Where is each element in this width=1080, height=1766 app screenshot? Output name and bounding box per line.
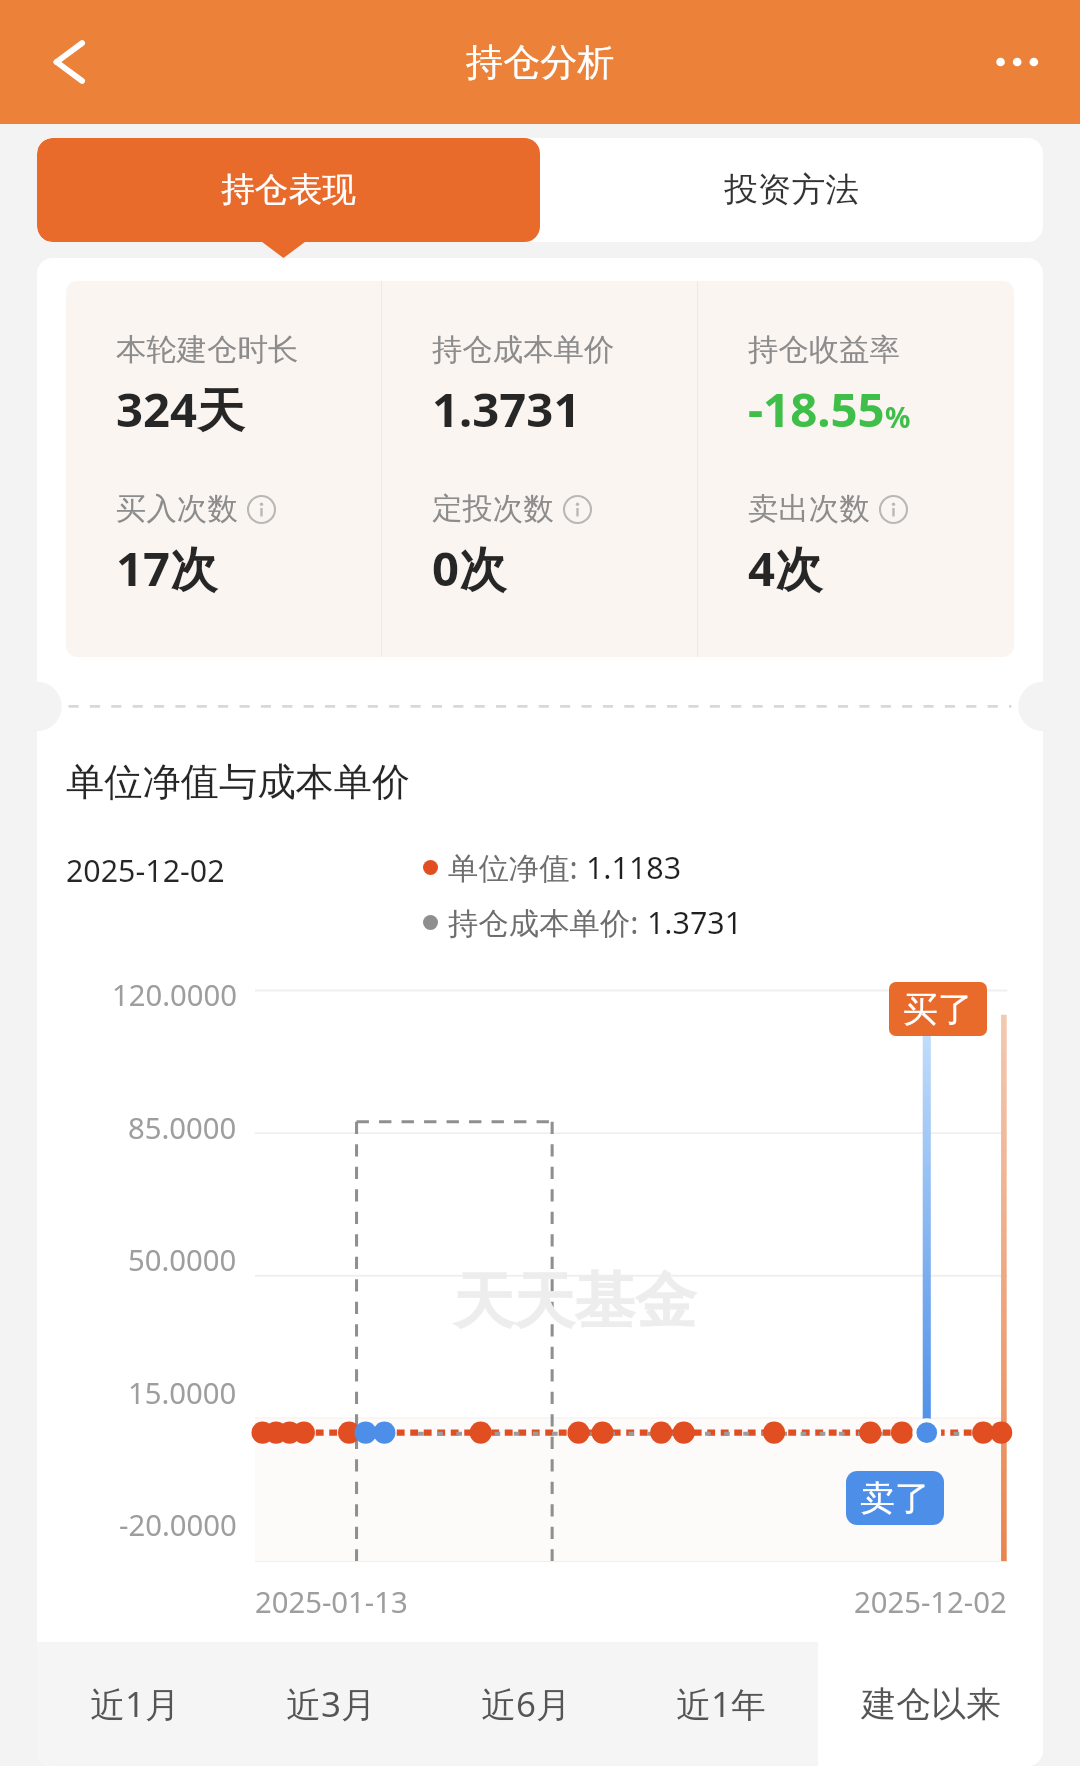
staticText: 持仓成本单价: — [448, 902, 647, 943]
staticText: 单位净值: — [448, 847, 586, 888]
staticText: 2025-12-02 — [854, 1582, 1007, 1622]
staticText: 近6月 — [481, 1680, 571, 1728]
staticText: 2025-01-13 — [255, 1582, 408, 1622]
staticText: 持仓表现 — [221, 169, 356, 212]
staticText: -20.0000 — [119, 1505, 237, 1545]
staticText: 近1年 — [676, 1680, 766, 1728]
staticText: 0次 — [432, 535, 507, 600]
staticText: 建仓以来 — [861, 1682, 1001, 1726]
staticText: % — [885, 398, 911, 436]
button[interactable]: 近3月 — [233, 1642, 428, 1766]
staticText: 投资方法 — [724, 169, 859, 212]
staticText: 近1月 — [90, 1680, 180, 1728]
button[interactable]: 近1月 — [37, 1642, 233, 1766]
staticText: 持仓分析 — [466, 39, 615, 86]
staticText: 17次 — [116, 535, 218, 600]
button[interactable]: 建仓以来 — [818, 1642, 1043, 1766]
staticText: -18.55 — [748, 376, 885, 440]
staticText: 买了 — [903, 987, 973, 1031]
staticText: 近3月 — [286, 1680, 376, 1728]
staticText: 4次 — [748, 535, 823, 600]
staticText: 1.3731 — [647, 902, 743, 943]
button[interactable]: Back — [18, 19, 104, 105]
staticText: 定投次数 — [432, 490, 554, 528]
staticText: 1.3731 — [432, 376, 581, 440]
staticText: 120.0000 — [112, 975, 237, 1015]
staticText: 持仓收益率 — [748, 331, 900, 369]
staticText: 本轮建仓时长 — [116, 331, 299, 369]
staticText: 卖出次数 — [748, 490, 870, 528]
button[interactable]: 投资方法 — [540, 138, 1043, 242]
button[interactable]: More options — [974, 17, 1064, 107]
staticText: 50.0000 — [128, 1240, 237, 1280]
staticText: 单位净值与成本单价 — [66, 758, 411, 806]
button[interactable]: 持仓表现 — [37, 138, 540, 242]
button[interactable]: 近6月 — [428, 1642, 623, 1766]
staticText: 85.0000 — [128, 1108, 237, 1148]
button[interactable]: 买了 — [889, 982, 987, 1036]
button[interactable]: 卖了 — [846, 1471, 944, 1525]
staticText: 持仓成本单价 — [432, 331, 615, 369]
staticText: 15.0000 — [128, 1373, 237, 1413]
staticText: 1.1183 — [586, 847, 682, 888]
button[interactable]: 近1年 — [623, 1642, 818, 1766]
staticText: 天天基金 — [453, 1264, 696, 1341]
staticText: 卖了 — [860, 1476, 930, 1520]
staticText: 2025-12-02 — [66, 850, 225, 891]
staticText: 买入次数 — [116, 490, 238, 528]
staticText: 324天 — [116, 376, 245, 441]
